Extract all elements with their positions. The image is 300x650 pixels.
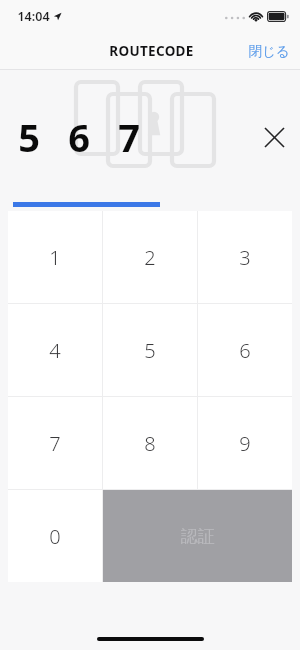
button[interactable]: 7 [8,397,102,489]
button[interactable]: 9 [198,397,292,489]
button[interactable]: 0 [8,490,102,582]
button[interactable]: 1 [8,211,102,303]
staticText: 4 [49,337,61,364]
staticText: 8 [144,430,156,457]
button[interactable]: 3 [198,211,292,303]
staticText: 6 [68,111,90,163]
staticText: 0 [49,523,61,550]
staticText: 6 [239,337,251,364]
staticText: 7 [118,111,140,163]
staticText: 3 [239,244,251,271]
button[interactable]: Clear code [257,120,291,154]
button[interactable]: 2 [103,211,197,303]
staticText: 14:04 [17,8,50,25]
staticText: 1 [49,244,61,271]
staticText: 閉じる [248,43,290,60]
button[interactable]: 8 [103,397,197,489]
staticText: 5 [18,111,40,163]
staticText: 7 [49,430,61,457]
staticText: 2 [144,244,156,271]
button[interactable]: 閉じる [238,37,300,66]
staticText: ROUTECODE [109,42,194,60]
button[interactable]: 5 [103,304,197,396]
staticText: 5 [144,337,156,364]
staticText: 9 [239,430,251,457]
button[interactable]: 6 [198,304,292,396]
button[interactable]: 4 [8,304,102,396]
staticText: 認証 [181,526,215,547]
